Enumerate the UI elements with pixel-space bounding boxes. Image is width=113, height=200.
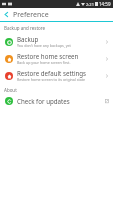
staticText: Back up your home screen first. — [17, 60, 71, 65]
button[interactable]: Restore default settings — [0, 67, 113, 84]
staticText: Preference — [13, 10, 49, 20]
button[interactable]: Backup — [0, 33, 113, 50]
button[interactable]: Back — [0, 8, 13, 21]
staticText: 2:21 — [86, 2, 94, 7]
staticText: You don't have any backups, yet — [17, 43, 71, 48]
staticText: 14:59 — [99, 1, 111, 7]
staticText: Restore home screen to its original stat… — [17, 77, 86, 82]
staticText: Backup and restore — [4, 25, 46, 31]
staticText: Restore default settings — [17, 69, 87, 77]
button[interactable]: Restore home screen — [0, 50, 113, 67]
staticText: About — [4, 87, 17, 93]
staticText: Backup — [17, 35, 39, 43]
staticText: Restore home screen — [17, 52, 79, 60]
button[interactable]: Check for updates — [0, 95, 113, 107]
staticText: Check for updates — [17, 97, 70, 105]
